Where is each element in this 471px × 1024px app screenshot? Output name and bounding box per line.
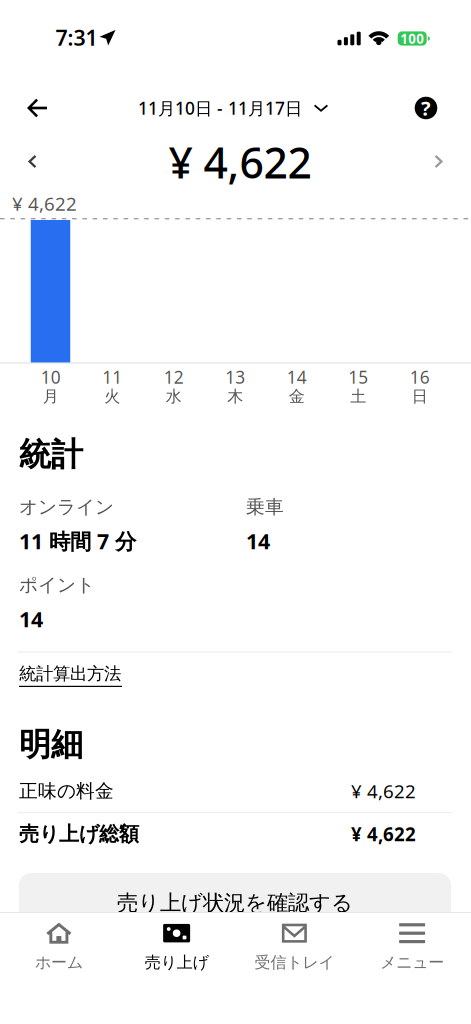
staticText: 受信トレイ <box>254 953 334 972</box>
staticText: 15 <box>348 365 368 388</box>
button[interactable]: 統計算出方法 <box>19 663 139 687</box>
button[interactable]: ヘルプ <box>403 86 449 130</box>
staticText: ¥ 4,622 <box>351 779 416 803</box>
staticText: 11月10日 - 11月17日 <box>138 96 302 119</box>
staticText: ? <box>421 95 431 121</box>
staticText: 金 <box>289 387 305 406</box>
staticText: 正味の料金 <box>19 779 114 802</box>
staticText: 100 <box>400 30 424 47</box>
staticText: ¥ 4,622 <box>12 191 77 216</box>
button[interactable]: 次の週 <box>417 139 461 183</box>
staticText: メニュー <box>380 953 444 972</box>
staticText: 売り上げ <box>145 953 209 972</box>
button[interactable]: 11月10日 - 11月17日 <box>138 86 328 130</box>
staticText: 7:31 <box>55 23 97 52</box>
button[interactable]: ホーム <box>0 913 118 977</box>
staticText: 14 <box>246 527 270 555</box>
staticText: ポイント <box>19 573 95 596</box>
staticText: 日 <box>412 387 428 406</box>
button[interactable]: メニュー <box>353 913 471 977</box>
staticText: 12 <box>164 365 184 388</box>
staticText: ¥ 4,622 <box>168 134 311 190</box>
staticText: 14 <box>19 605 43 633</box>
staticText: オンライン <box>19 495 114 518</box>
staticText: 水 <box>166 387 182 406</box>
staticText: 11 時間 7 分 <box>19 527 136 555</box>
staticText: 11 <box>102 365 122 388</box>
button[interactable]: 売り上げ <box>118 913 236 977</box>
staticText: ホーム <box>35 953 83 972</box>
staticText: 売り上げ状況を確認する <box>117 890 353 916</box>
button[interactable]: 受信トレイ <box>235 913 353 977</box>
staticText: 月 <box>43 387 59 406</box>
staticText: 木 <box>227 387 243 406</box>
staticText: 13 <box>225 365 245 388</box>
staticText: 14 <box>287 365 307 388</box>
staticText: ¥ 4,622 <box>351 822 416 846</box>
staticText: 土 <box>350 387 366 406</box>
staticText: 乗車 <box>246 495 284 518</box>
button[interactable]: 売り上げ状況を確認する <box>19 873 451 933</box>
staticText: 16 <box>410 365 430 388</box>
staticText: 明細 <box>19 725 83 764</box>
staticText: 統計算出方法 <box>19 663 121 684</box>
staticText: 火 <box>104 387 120 406</box>
staticText: 10 <box>41 365 61 388</box>
staticText: 売り上げ総額 <box>19 822 139 846</box>
button[interactable]: 前の週 <box>10 139 54 183</box>
staticText: 統計 <box>19 435 83 474</box>
button[interactable]: 戻る <box>10 86 64 130</box>
